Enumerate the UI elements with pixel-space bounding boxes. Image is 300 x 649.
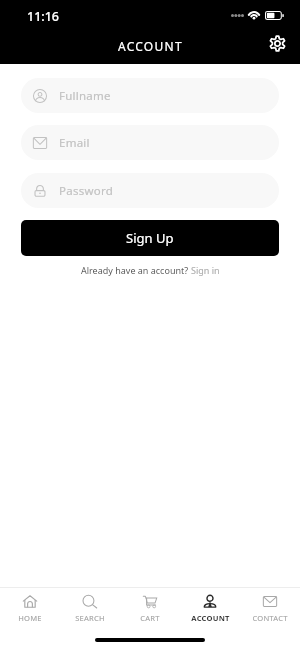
staticText: Password xyxy=(59,183,114,199)
staticText: Email xyxy=(59,135,90,151)
button[interactable]: SEARCH xyxy=(60,588,120,622)
staticText: Sign in xyxy=(191,264,220,276)
button[interactable]: Settings xyxy=(262,28,292,58)
button[interactable]: Email xyxy=(21,125,279,160)
staticText: SEARCH xyxy=(75,613,105,622)
staticText: ACCOUNT xyxy=(191,613,230,622)
button[interactable]: HOME xyxy=(0,588,60,622)
staticText: 11:16 xyxy=(27,8,60,25)
button[interactable]: CONTACT xyxy=(240,588,300,622)
staticText: Fullname xyxy=(59,88,111,104)
staticText: Sign Up xyxy=(126,229,174,247)
button[interactable]: CART xyxy=(120,588,180,622)
staticText: CONTACT xyxy=(252,613,288,622)
button[interactable]: ACCOUNT xyxy=(180,588,240,622)
button[interactable]: Sign in xyxy=(191,264,220,276)
button[interactable]: Password xyxy=(21,173,279,208)
staticText: HOME xyxy=(18,613,42,622)
button[interactable]: Fullname xyxy=(21,78,279,113)
staticText: ACCOUNT xyxy=(118,38,183,54)
staticText: CART xyxy=(140,613,160,622)
staticText: Already have an account? xyxy=(81,264,191,276)
button[interactable]: Sign Up xyxy=(21,220,279,256)
